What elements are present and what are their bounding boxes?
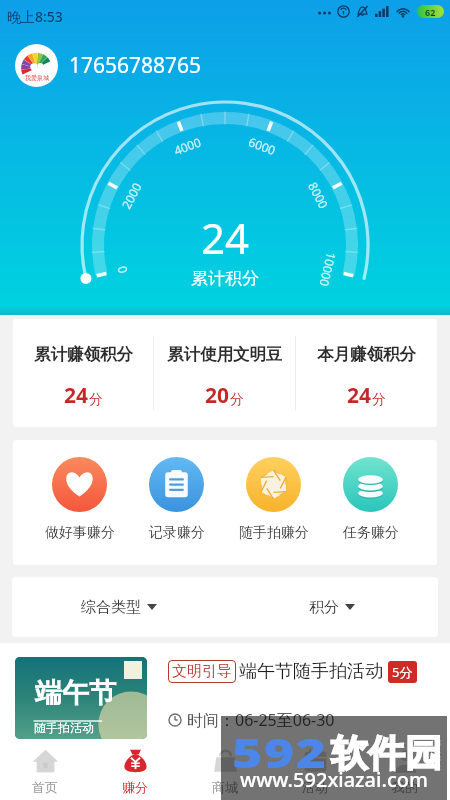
button[interactable]: 商城 <box>180 742 270 800</box>
staticText: 任务赚分 <box>343 524 399 542</box>
button[interactable]: 端午节 <box>0 643 450 800</box>
staticText: 综合类型 <box>81 598 141 617</box>
staticText: 本月赚领积分 <box>317 344 416 365</box>
button[interactable]: 随手拍赚分 <box>225 457 322 542</box>
staticText: 赚分 <box>122 779 148 795</box>
button[interactable]: 我的 <box>360 742 450 800</box>
staticText: 24 <box>64 381 89 410</box>
staticText: 62 <box>425 6 436 18</box>
staticText: 晚上8:53 <box>7 7 63 26</box>
staticText: 17656788765 <box>69 51 202 80</box>
staticText: 首页 <box>32 779 58 795</box>
staticText: 做好事赚分 <box>45 524 115 542</box>
button[interactable]: 累计使用文明豆 <box>154 319 295 427</box>
staticText: 活动 <box>302 779 328 795</box>
staticText: 分 <box>230 391 244 409</box>
button[interactable]: 本月赚领积分 <box>296 319 437 427</box>
staticText: 软件园 <box>331 730 442 777</box>
staticText: 24 <box>201 209 250 266</box>
button[interactable]: 记录赚分 <box>128 457 225 542</box>
staticText: 随手拍活动 <box>34 720 94 735</box>
staticText: 我爱泉城 <box>25 74 49 82</box>
staticText: 累计积分 <box>191 268 259 289</box>
staticText: 5分 <box>392 663 413 681</box>
staticText: 文明引导 <box>172 662 232 681</box>
staticText: 端午节随手拍活动 <box>239 660 383 683</box>
staticText: 592 <box>232 725 328 779</box>
staticText: 我的 <box>392 779 418 795</box>
staticText: 24 <box>347 381 372 410</box>
button[interactable]: 首页 <box>0 742 90 800</box>
button[interactable]: 综合类型 <box>12 577 225 637</box>
button[interactable]: 任务赚分 <box>322 457 419 542</box>
staticText: 20 <box>205 381 230 410</box>
staticText: 端午节 <box>35 676 116 710</box>
staticText: www.592xiazai.com <box>240 766 428 793</box>
staticText: 分 <box>89 391 103 409</box>
button[interactable]: 累计赚领积分 <box>13 319 153 427</box>
staticText: 记录赚分 <box>149 524 205 542</box>
staticText: 时间：06-25至06-30 <box>187 709 335 731</box>
button[interactable]: 积分 <box>225 577 438 637</box>
staticText: 随手拍赚分 <box>239 524 309 542</box>
button[interactable]: 做好事赚分 <box>31 457 128 542</box>
staticText: 商城 <box>212 779 238 795</box>
button[interactable]: 活动 <box>270 742 360 800</box>
staticText: 累计使用文明豆 <box>167 344 283 365</box>
staticText: 积分 <box>309 598 339 617</box>
staticText: 分 <box>372 391 386 409</box>
staticText: 累计赚领积分 <box>34 344 133 365</box>
button[interactable]: 赚分 <box>90 742 180 800</box>
